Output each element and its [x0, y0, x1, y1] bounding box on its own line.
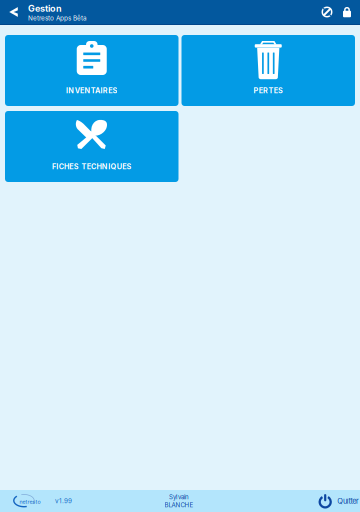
button[interactable]: INVENTAIRES [5, 35, 178, 106]
button[interactable]: Rotation lock [317, 0, 337, 24]
staticText: BLANCHE [164, 501, 193, 509]
staticText: Netresto Apps Bêta [28, 14, 87, 22]
staticText: Quitter [337, 496, 359, 505]
button[interactable]: Back [0, 0, 23, 24]
staticText: FICHES TECHNIQUES [52, 162, 132, 171]
staticText: netresto [19, 498, 40, 505]
staticText: Sylvain [169, 493, 189, 501]
staticText: v1.99 [55, 497, 72, 505]
staticText: INVENTAIRES [66, 86, 117, 95]
button[interactable]: Lock [337, 0, 357, 24]
button[interactable]: Quitter [318, 493, 360, 508]
button[interactable]: PERTES [181, 35, 355, 106]
staticText: PERTES [253, 86, 283, 95]
staticText: Gestion [28, 3, 62, 14]
button[interactable]: FICHES TECHNIQUES [5, 111, 178, 182]
